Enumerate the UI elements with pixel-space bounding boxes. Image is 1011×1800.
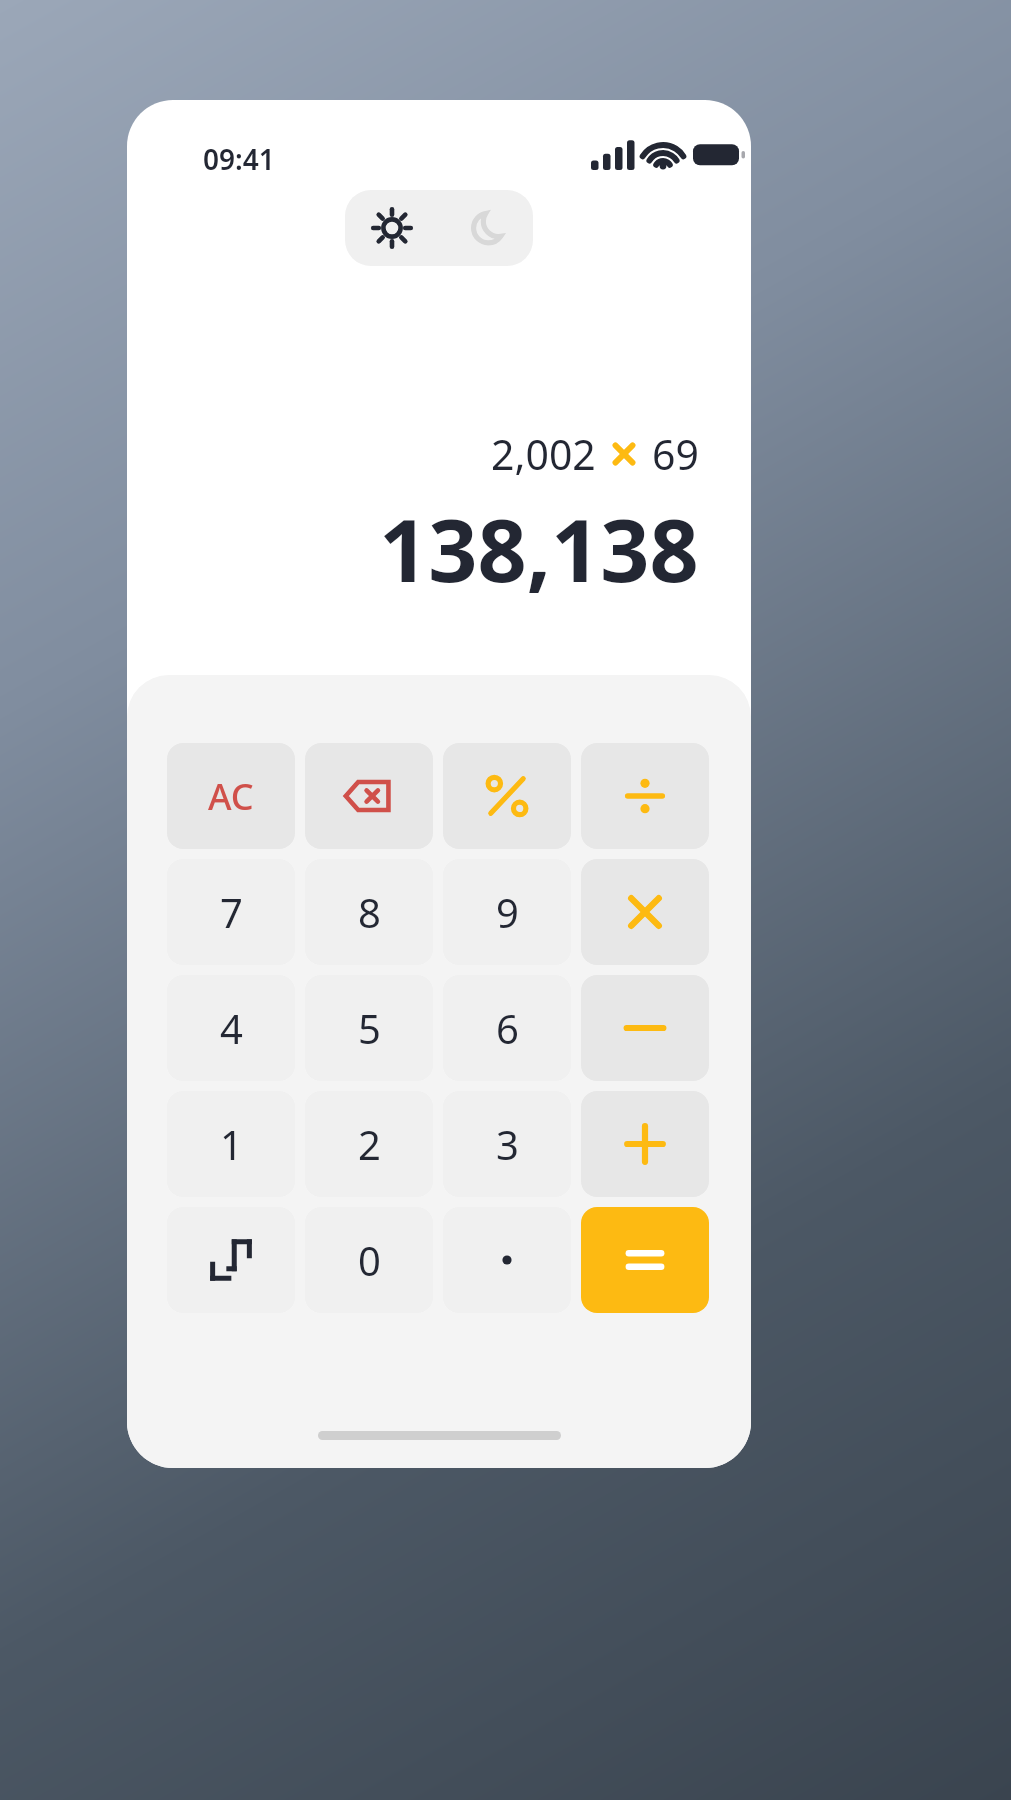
button[interactable]: Equals (581, 1207, 709, 1313)
button[interactable]: Minus (581, 975, 709, 1081)
button[interactable]: AC (167, 743, 295, 849)
button[interactable]: Resize (167, 1207, 295, 1313)
button[interactable]: 4 (167, 975, 295, 1081)
button[interactable]: 5 (305, 975, 433, 1081)
staticText: 3 (496, 1117, 519, 1171)
button[interactable]: Backspace (305, 743, 433, 849)
button[interactable]: 8 (305, 859, 433, 965)
staticText: 138,138 (379, 490, 699, 607)
button[interactable]: Dark theme (439, 190, 533, 266)
staticText: 1 (220, 1117, 243, 1171)
staticText: 2 (358, 1117, 381, 1171)
button[interactable]: 2 (305, 1091, 433, 1197)
button[interactable]: Multiply (581, 859, 709, 965)
staticText: 8 (358, 885, 381, 939)
staticText: 0 (358, 1233, 381, 1287)
staticText: 2,002 (491, 426, 596, 482)
staticText: 6 (496, 1001, 519, 1055)
staticText: 09:41 (203, 140, 275, 178)
staticText: 5 (358, 1001, 381, 1055)
button[interactable]: 6 (443, 975, 571, 1081)
button[interactable]: 7 (167, 859, 295, 965)
button[interactable]: Light theme (345, 190, 439, 266)
button[interactable]: 1 (167, 1091, 295, 1197)
button[interactable]: Decimal point (443, 1207, 571, 1313)
staticText: AC (208, 772, 254, 821)
button[interactable]: 9 (443, 859, 571, 965)
staticText: 7 (220, 885, 243, 939)
button[interactable]: Divide (581, 743, 709, 849)
button[interactable]: 0 (305, 1207, 433, 1313)
staticText: 69 (652, 426, 699, 482)
button[interactable]: Plus (581, 1091, 709, 1197)
button[interactable]: 3 (443, 1091, 571, 1197)
staticText: 4 (220, 1001, 243, 1055)
button[interactable]: Percent (443, 743, 571, 849)
staticText: 9 (496, 885, 519, 939)
